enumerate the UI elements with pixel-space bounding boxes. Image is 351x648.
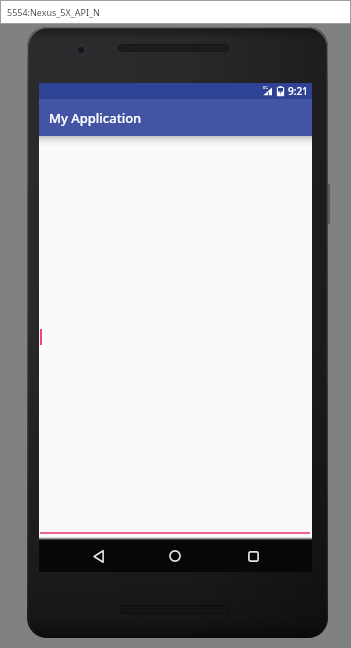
button[interactable]: Home — [155, 540, 195, 572]
button[interactable]: Text field — [39, 325, 312, 349]
button[interactable]: Recent apps — [233, 540, 273, 572]
button[interactable]: My Application — [39, 99, 312, 136]
button[interactable]: Back — [78, 540, 118, 572]
staticText: 5554:Nexus_5X_API_N — [7, 6, 100, 18]
staticText: 9:21 — [288, 84, 308, 98]
staticText: My Application — [49, 109, 142, 127]
